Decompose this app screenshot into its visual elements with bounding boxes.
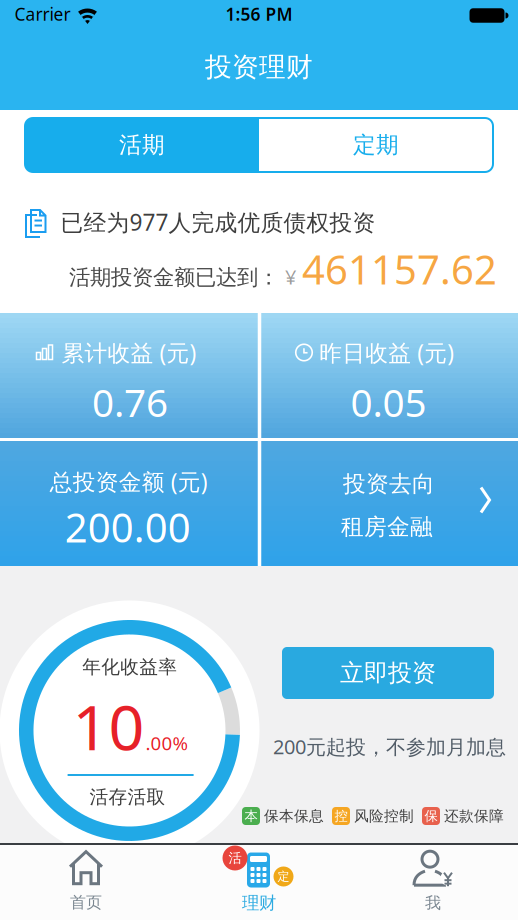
staticText: 定期 [353, 131, 399, 159]
staticText: 控 [334, 808, 347, 824]
button[interactable]: 活期 [25, 118, 259, 172]
staticText: 1:56 PM [225, 2, 292, 25]
staticText: .00% [145, 731, 188, 755]
staticText: 我 [425, 893, 441, 913]
staticText: 昨日收益 (元) [319, 337, 454, 367]
staticText: 风险控制 [354, 807, 414, 825]
staticText: 还款保障 [444, 807, 504, 825]
button[interactable]: 定期 [259, 118, 493, 172]
staticText: 活期 [119, 131, 165, 159]
button[interactable]: 投资去向 [261, 441, 518, 566]
staticText: 年化收益率 [82, 655, 177, 678]
staticText: 投资去向 [343, 470, 435, 498]
button[interactable]: 首页 [1, 845, 171, 917]
staticText: 0.76 [92, 376, 168, 428]
staticText: 保 [424, 808, 437, 824]
button[interactable]: 理财 [174, 845, 344, 917]
staticText: Carrier [14, 2, 70, 25]
staticText: 定 [277, 869, 289, 884]
staticText: 已经为977人完成优质债权投资 [60, 207, 375, 237]
staticText: 首页 [70, 893, 102, 912]
staticText: 0.05 [350, 376, 426, 428]
staticText: 200元起投，不参加月加息 [273, 733, 506, 760]
staticText: 租房金融 [341, 513, 433, 541]
staticText: 200.00 [65, 500, 191, 553]
staticText: 活存活取 [89, 785, 165, 808]
staticText: 投资理财 [205, 51, 313, 83]
staticText: ¥ [285, 263, 296, 290]
button[interactable]: 立即投资 [282, 647, 494, 699]
staticText: 461157.62 [302, 242, 497, 295]
staticText: 理财 [242, 892, 276, 914]
staticText: 10 [72, 684, 144, 768]
staticText: 总投资金额 (元) [50, 466, 208, 496]
staticText: 累计收益 (元) [61, 337, 196, 367]
button[interactable]: 我 [348, 845, 518, 917]
staticText: 保本保息 [264, 807, 324, 825]
staticText: 立即投资 [340, 658, 436, 688]
staticText: 活 [228, 850, 241, 866]
staticText: 活期投资金额已达到： [69, 264, 279, 290]
staticText: 本 [244, 808, 257, 824]
